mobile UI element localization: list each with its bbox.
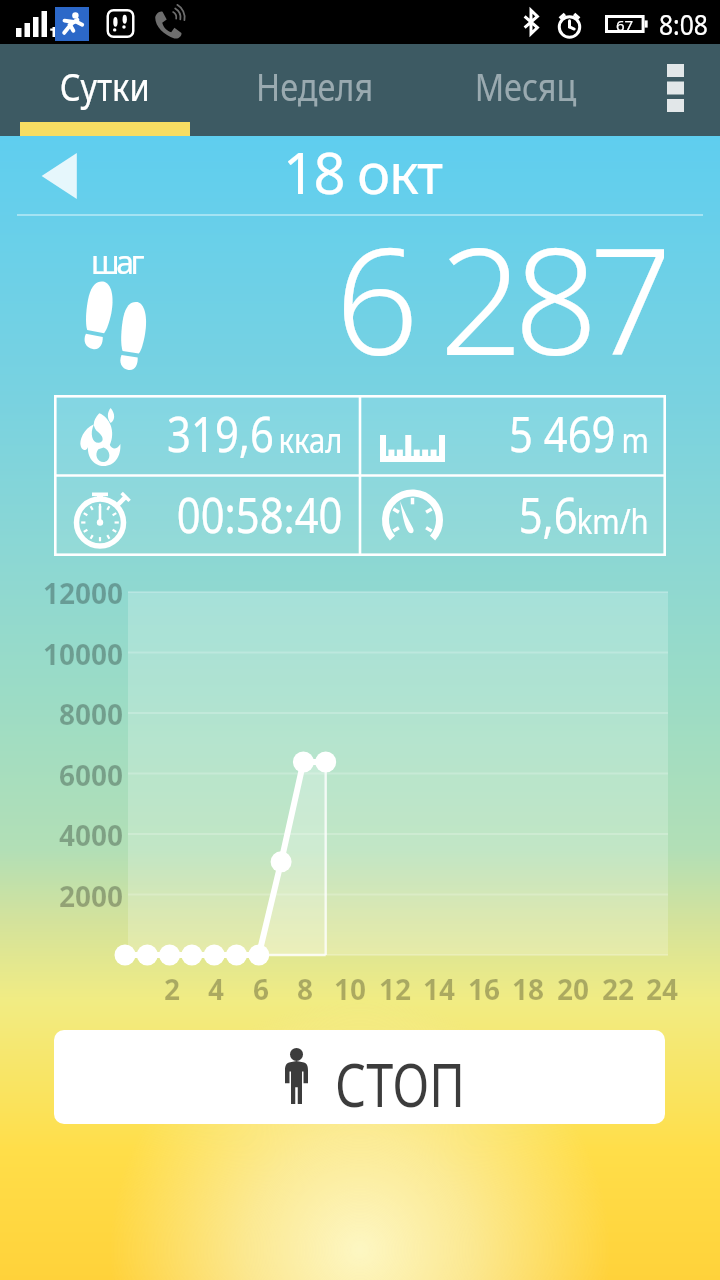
staticText: 6000 <box>59 756 124 794</box>
staticText: 8:08 <box>659 5 708 43</box>
staticText: 12 <box>379 970 412 1008</box>
staticText: Сутки <box>60 60 150 112</box>
button[interactable]: 5,6 <box>360 473 666 554</box>
staticText: ккал <box>278 417 343 463</box>
staticText: 2000 <box>59 877 124 915</box>
staticText: 67 <box>616 15 634 33</box>
staticText: 14 <box>423 970 456 1008</box>
staticText: 8 <box>297 970 314 1008</box>
staticText: 10 <box>334 970 367 1008</box>
staticText: km/h <box>577 498 649 544</box>
staticText: 2 <box>164 970 181 1008</box>
button[interactable]: СТОП <box>54 1030 665 1124</box>
button[interactable]: Previous day <box>12 136 108 216</box>
staticText: 18 окт <box>283 134 442 210</box>
staticText: 18 <box>512 970 545 1008</box>
staticText: 20 <box>557 970 590 1008</box>
staticText: 24 <box>646 970 679 1008</box>
staticText: 5,6 <box>519 480 578 548</box>
staticText: Неделя <box>256 60 374 112</box>
staticText: СТОП <box>335 1043 466 1124</box>
staticText: 22 <box>602 970 635 1008</box>
staticText: 6 287 <box>335 198 664 368</box>
staticText: шаг <box>91 240 142 284</box>
button[interactable]: Сутки <box>0 44 210 136</box>
staticText: 10000 <box>43 635 124 673</box>
button[interactable]: Неделя <box>210 44 420 136</box>
button[interactable]: 5 469 <box>360 392 666 473</box>
staticText: 16 <box>468 970 501 1008</box>
staticText: Месяц <box>475 60 576 112</box>
staticText: m <box>621 417 649 463</box>
staticText: 319,6 <box>167 399 274 467</box>
staticText: 4000 <box>59 816 124 854</box>
button[interactable]: 319,6 <box>54 392 360 473</box>
button[interactable]: 00:58:40 <box>54 473 360 554</box>
staticText: 8000 <box>59 695 124 733</box>
staticText: 5 469 <box>509 399 616 467</box>
button[interactable]: Месяц <box>420 44 630 136</box>
button[interactable]: More options <box>630 44 720 136</box>
staticText: 4 <box>208 970 225 1008</box>
staticText: 12000 <box>43 574 124 612</box>
staticText: 6 <box>253 970 270 1008</box>
staticText: 00:58:40 <box>177 480 343 548</box>
